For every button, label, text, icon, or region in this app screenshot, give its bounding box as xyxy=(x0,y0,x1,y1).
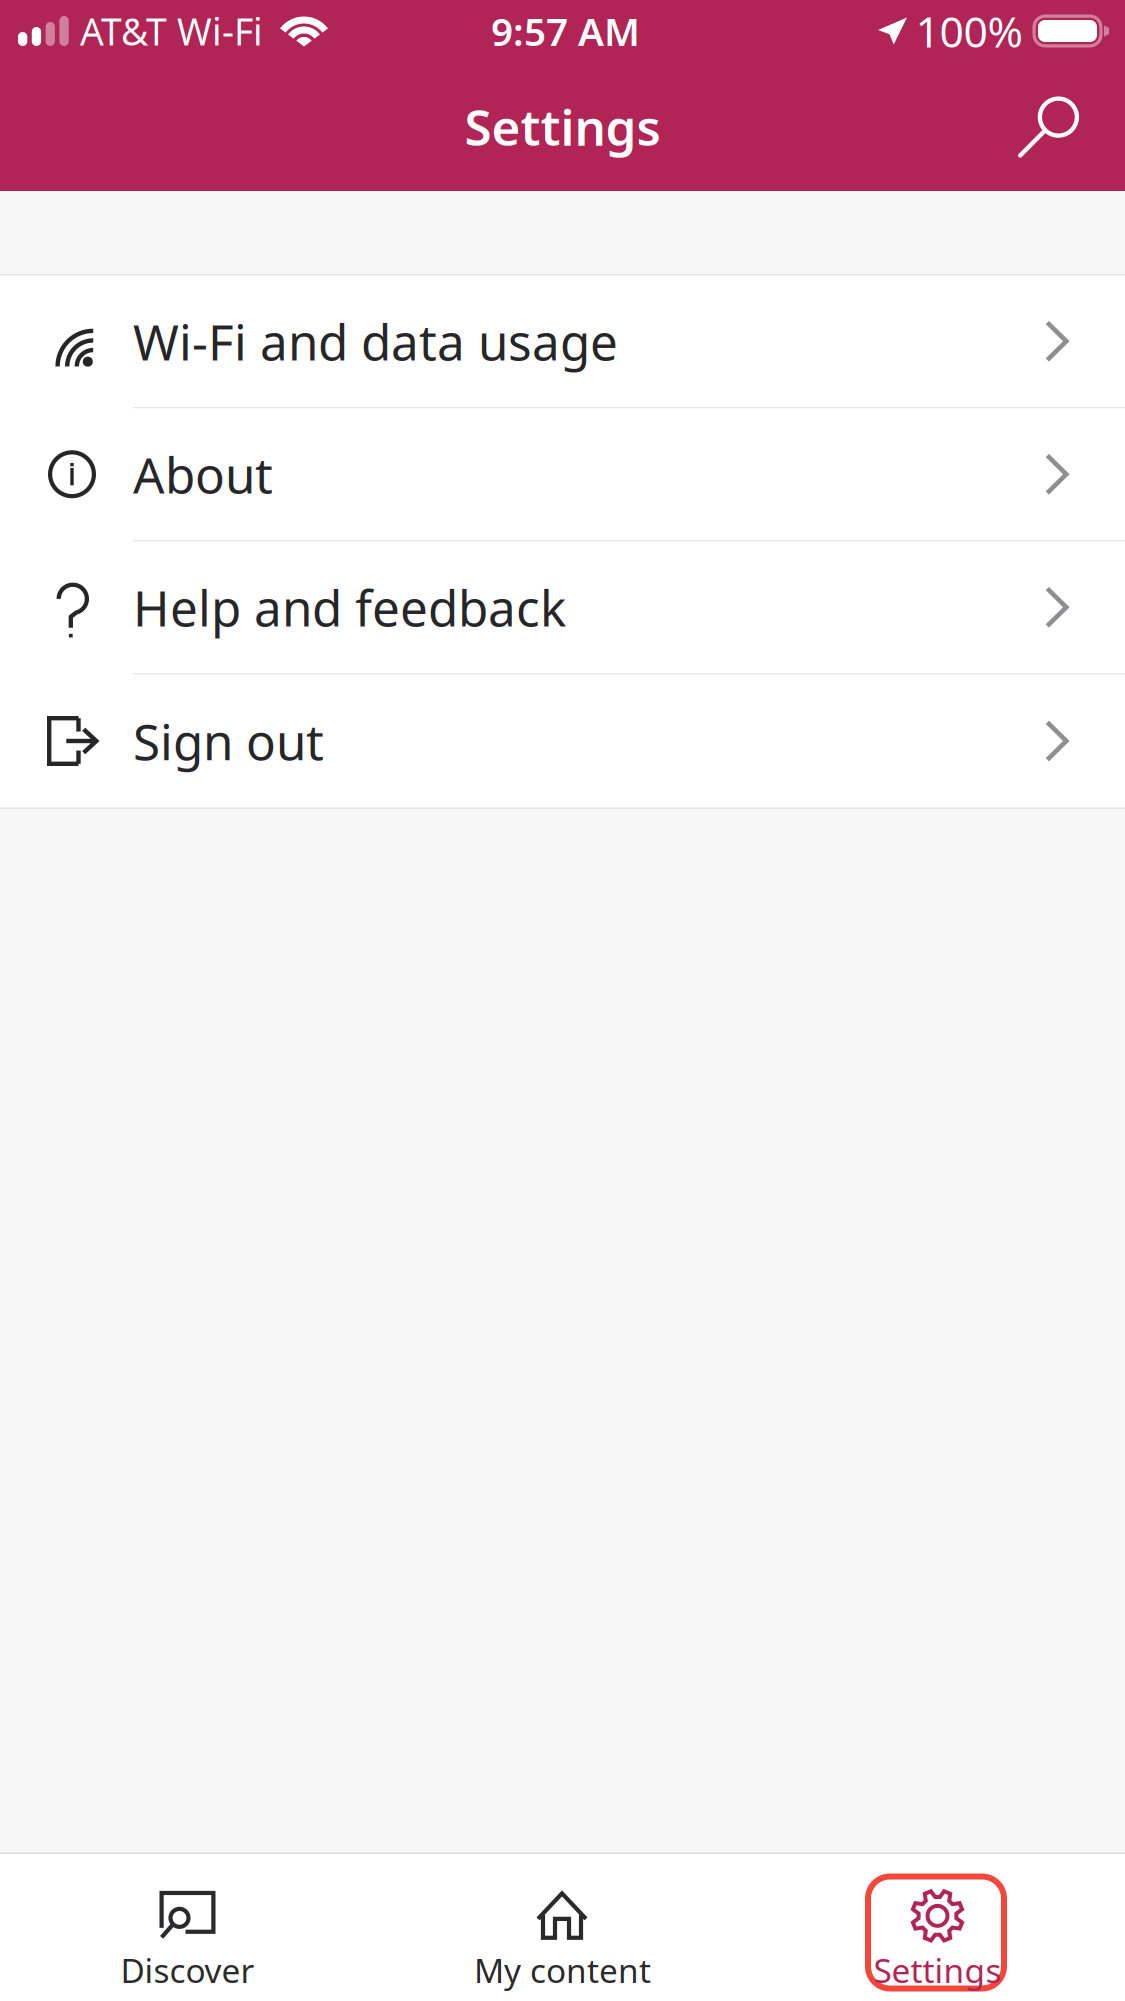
staticText: About xyxy=(133,441,273,507)
staticText: Wi-Fi and data usage xyxy=(133,308,618,374)
staticText: Discover xyxy=(120,1948,254,1992)
staticText: AT&T Wi-Fi xyxy=(80,6,263,56)
button[interactable]: My content xyxy=(375,1854,750,2001)
button[interactable]: About xyxy=(0,408,1125,541)
button[interactable]: Help and feedback xyxy=(0,541,1125,674)
staticText: My content xyxy=(474,1948,651,1992)
button[interactable]: Sign out xyxy=(0,674,1125,807)
button[interactable]: Settings xyxy=(750,1854,1125,2001)
staticText: Settings xyxy=(873,1948,1001,1992)
button[interactable]: Discover xyxy=(0,1854,375,2001)
staticText: 9:57 AM xyxy=(491,5,640,57)
button[interactable]: Wi-Fi and data usage xyxy=(0,275,1125,408)
staticText: 100% xyxy=(915,3,1022,59)
staticText: Help and feedback xyxy=(133,574,566,640)
staticText: Sign out xyxy=(133,708,324,774)
staticText: Settings xyxy=(464,94,660,159)
button[interactable]: Search xyxy=(1018,62,1125,191)
